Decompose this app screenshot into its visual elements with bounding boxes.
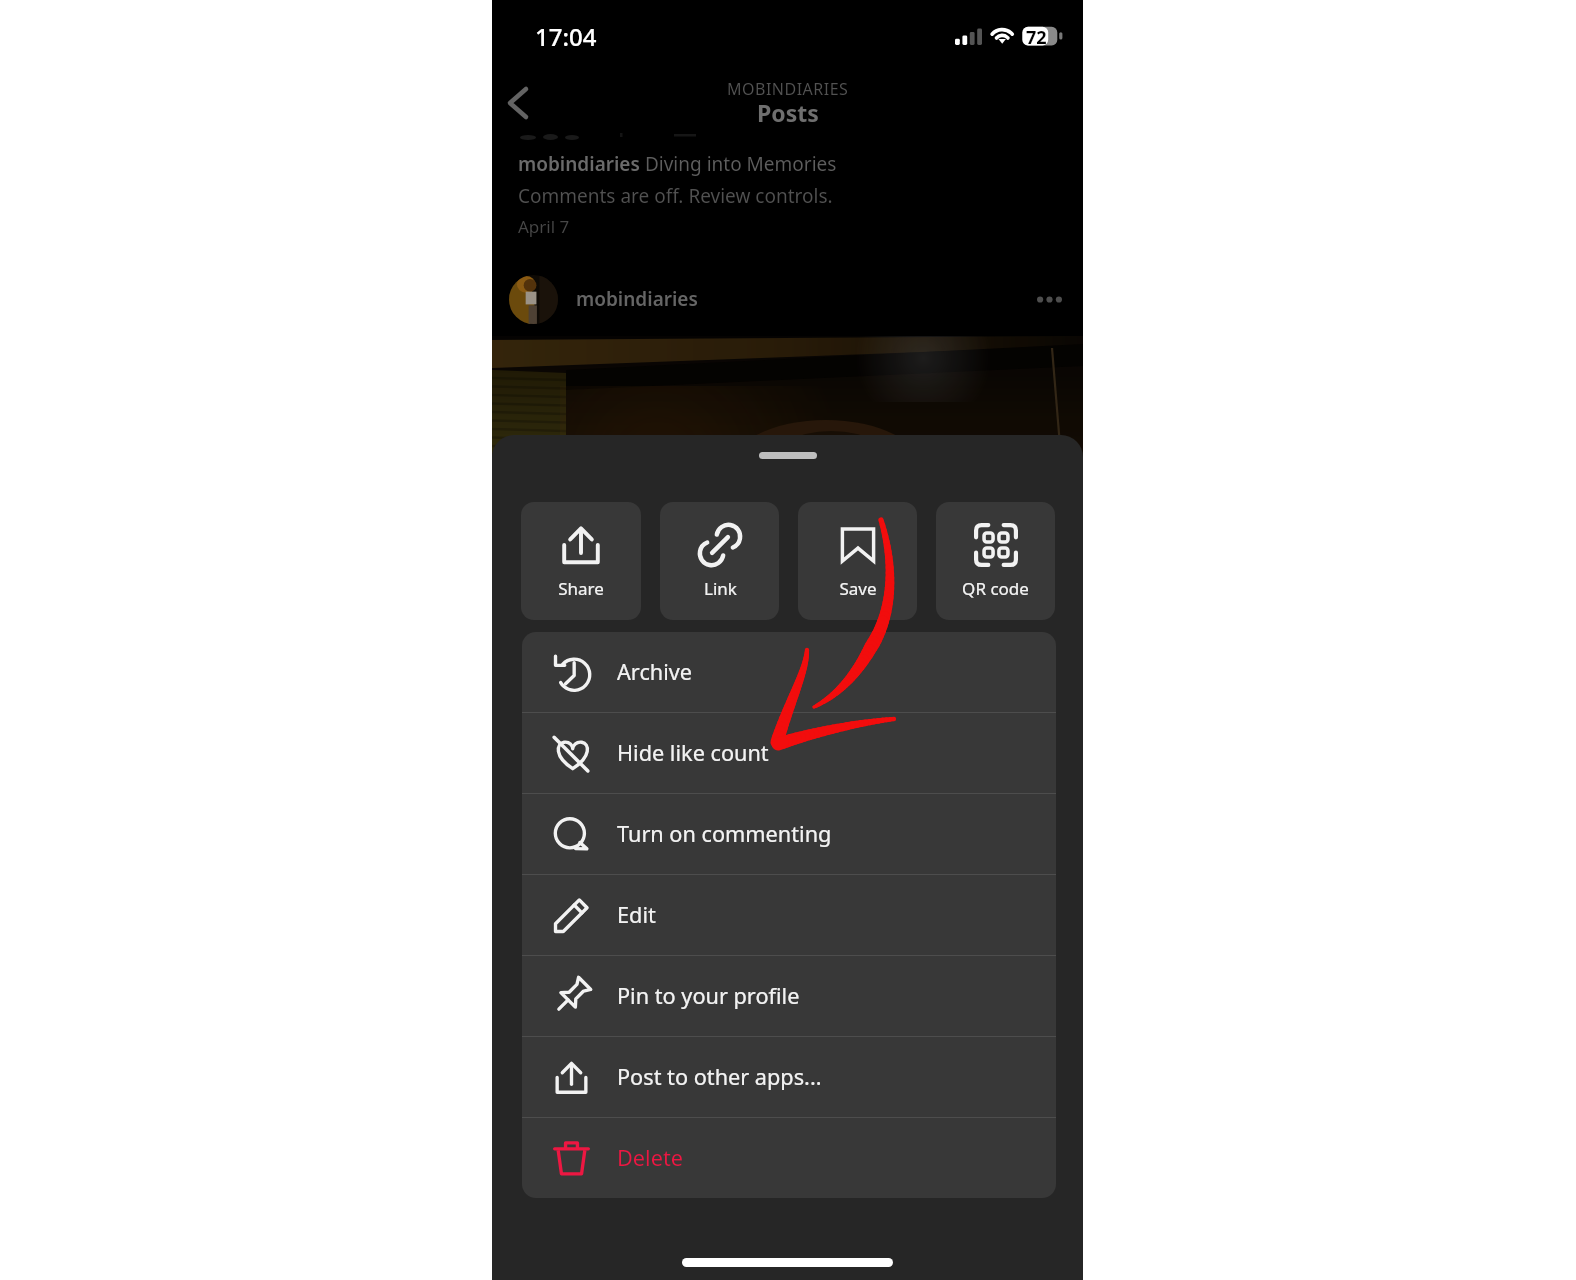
staticText: Diving into Memories bbox=[640, 151, 837, 177]
button[interactable]: Share bbox=[521, 502, 641, 620]
staticText: Posts bbox=[757, 97, 819, 128]
staticText: Turn on commenting bbox=[617, 819, 832, 849]
staticText: Save bbox=[839, 577, 877, 600]
button[interactable]: Post to other apps... bbox=[522, 1037, 1056, 1117]
button[interactable]: Back bbox=[494, 72, 550, 128]
button[interactable]: More options bbox=[1026, 276, 1072, 322]
button[interactable]: Hide like count bbox=[522, 713, 1056, 793]
staticText: Archive bbox=[617, 657, 693, 687]
staticText: Hide like count bbox=[617, 738, 769, 768]
staticText: Pin to your profile bbox=[617, 981, 800, 1011]
button[interactable]: Save bbox=[798, 502, 917, 620]
staticText: MOBINDIARIES bbox=[727, 78, 849, 100]
staticText: QR code bbox=[962, 577, 1029, 600]
staticText: Comments are off. Review controls. bbox=[518, 183, 833, 209]
button[interactable]: QR code bbox=[936, 502, 1055, 620]
staticText: April 7 bbox=[518, 215, 570, 238]
staticText: Delete bbox=[617, 1143, 683, 1173]
button[interactable]: mobindiaries bbox=[492, 274, 1083, 324]
staticText: Link bbox=[704, 577, 737, 600]
button[interactable]: Pin to your profile bbox=[522, 956, 1056, 1036]
button[interactable]: Edit bbox=[522, 875, 1056, 955]
staticText: mobindiaries bbox=[576, 286, 698, 312]
button[interactable]: Archive bbox=[522, 632, 1056, 712]
staticText: Share bbox=[558, 577, 604, 600]
staticText: Edit bbox=[617, 900, 656, 930]
button[interactable]: Turn on commenting bbox=[522, 794, 1056, 874]
button[interactable]: Delete bbox=[522, 1118, 1056, 1198]
staticText: 72 bbox=[1026, 25, 1047, 50]
staticText: Post to other apps... bbox=[617, 1062, 822, 1092]
button[interactable]: Link bbox=[660, 502, 779, 620]
staticText: 17:04 bbox=[535, 20, 597, 53]
staticText: mobindiaries bbox=[518, 151, 640, 177]
